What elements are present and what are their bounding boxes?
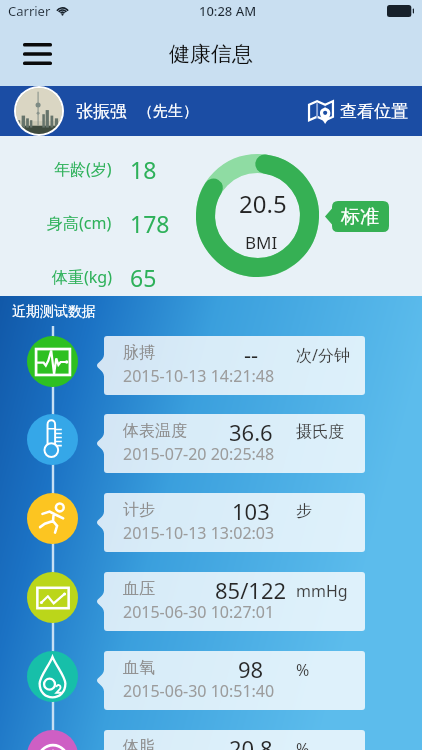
button[interactable]: 体脂 — [0, 730, 422, 750]
staticText: 2015-06-30 10:27:01 — [123, 601, 275, 623]
button[interactable]: 脉搏 — [0, 336, 422, 395]
staticText: 10:28 AM — [199, 2, 257, 20]
staticText: 身高(cm) — [47, 212, 112, 234]
staticText: 85/122 — [215, 575, 287, 605]
staticText: 近期测试数据 — [12, 303, 96, 321]
staticText: BMI — [245, 231, 278, 254]
staticText: 65 — [130, 262, 157, 292]
staticText: （先生） — [138, 102, 198, 121]
button[interactable]: 计步 — [0, 493, 422, 552]
staticText: 摄氏度 — [296, 422, 344, 442]
staticText: mmHg — [296, 580, 348, 602]
staticText: 18 — [130, 154, 157, 184]
staticText: 103 — [232, 496, 270, 526]
staticText: -- — [244, 339, 259, 369]
staticText: 次/分钟 — [296, 344, 350, 366]
staticText: 2015-10-13 14:21:48 — [123, 365, 275, 387]
staticText: 98 — [238, 654, 264, 684]
staticText: 标准 — [341, 205, 379, 229]
staticText: 查看位置 — [340, 101, 408, 122]
staticText: 体表温度 — [123, 421, 187, 441]
button[interactable]: 查看位置 — [308, 98, 408, 124]
staticText: Carrier — [8, 2, 51, 20]
staticText: 脉搏 — [123, 343, 155, 363]
staticText: 2015-10-13 13:02:03 — [123, 522, 275, 544]
staticText: 血氧 — [123, 658, 155, 678]
staticText: 张振强 — [76, 101, 127, 122]
staticText: 体脂 — [123, 737, 155, 750]
button[interactable]: 血压 — [0, 572, 422, 631]
staticText: % — [296, 659, 310, 681]
button[interactable]: Profile photo — [16, 88, 62, 134]
staticText: % — [296, 738, 310, 750]
staticText: 计步 — [123, 500, 155, 520]
staticText: 36.6 — [229, 417, 273, 447]
staticText: 步 — [296, 501, 312, 521]
staticText: 20.8 — [229, 733, 273, 750]
staticText: 血压 — [123, 579, 155, 599]
staticText: 2015-07-20 20:25:48 — [123, 443, 275, 465]
staticText: 20.5 — [239, 187, 287, 220]
staticText: 178 — [130, 208, 170, 238]
button[interactable]: Menu — [10, 31, 66, 77]
staticText: 2015-06-30 10:51:40 — [123, 680, 275, 702]
button[interactable]: 血氧 — [0, 651, 422, 710]
button[interactable]: 标准 — [325, 201, 389, 232]
button[interactable]: 体表温度 — [0, 414, 422, 473]
staticText: 年龄(岁) — [54, 158, 112, 180]
staticText: 体重(kg) — [52, 266, 112, 288]
staticText: 健康信息 — [169, 41, 253, 67]
